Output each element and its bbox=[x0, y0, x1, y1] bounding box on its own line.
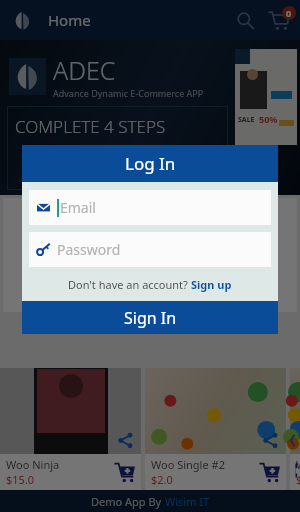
staticText: Home bbox=[48, 10, 91, 30]
button[interactable]: Share Woo Single #2 bbox=[145, 368, 286, 490]
button[interactable]: Sign In bbox=[22, 301, 278, 334]
staticText: 0 bbox=[286, 7, 292, 19]
button[interactable]: Share Woo Single #2 bbox=[259, 429, 281, 451]
staticText: Email bbox=[60, 198, 96, 217]
button[interactable]: Search bbox=[230, 5, 260, 35]
staticText: Password bbox=[57, 240, 121, 259]
button[interactable]: Add Wo to cart bbox=[296, 459, 297, 486]
staticText: Sign In bbox=[124, 307, 177, 329]
button[interactable]: Open navigation menu bbox=[8, 6, 36, 34]
button[interactable]: Share Woo Ninja bbox=[0, 368, 141, 490]
staticText: Log In bbox=[125, 152, 176, 175]
button[interactable]: Add Woo Single #2 to cart bbox=[256, 459, 283, 486]
button[interactable] bbox=[3, 198, 147, 312]
staticText: Don't have an account? bbox=[68, 277, 191, 292]
button[interactable]: Sign up bbox=[191, 277, 232, 292]
button[interactable] bbox=[152, 198, 297, 312]
button[interactable]: Cart, 0 items bbox=[262, 4, 294, 36]
staticText: Woo Ninja bbox=[6, 457, 60, 472]
button[interactable]: Email bbox=[29, 190, 271, 225]
button[interactable]: Share Wo bbox=[290, 429, 295, 451]
staticText: SALE bbox=[238, 115, 255, 125]
staticText: COMPLETE 4 STEPS bbox=[15, 115, 166, 138]
staticText: Advance Dynamic E-Commerce APP bbox=[53, 87, 204, 99]
button[interactable]: Add Woo Ninja to cart bbox=[111, 459, 138, 486]
button[interactable]: Share Woo Ninja bbox=[114, 429, 136, 451]
staticText: ADEC bbox=[53, 53, 116, 87]
staticText: & bbox=[74, 141, 85, 160]
button[interactable]: Password bbox=[29, 232, 271, 267]
staticText: Demo App By bbox=[91, 494, 165, 509]
staticText: $2.0 bbox=[151, 472, 173, 487]
staticText: $15.0 bbox=[6, 472, 35, 487]
staticText: Wisim IT bbox=[165, 494, 210, 509]
staticText: Sign up bbox=[191, 277, 232, 292]
button[interactable]: Share Wo bbox=[290, 368, 300, 490]
button[interactable]: Wisim IT bbox=[165, 494, 210, 509]
staticText: 50% bbox=[259, 113, 278, 125]
staticText: Woo Single #2 bbox=[151, 457, 225, 472]
